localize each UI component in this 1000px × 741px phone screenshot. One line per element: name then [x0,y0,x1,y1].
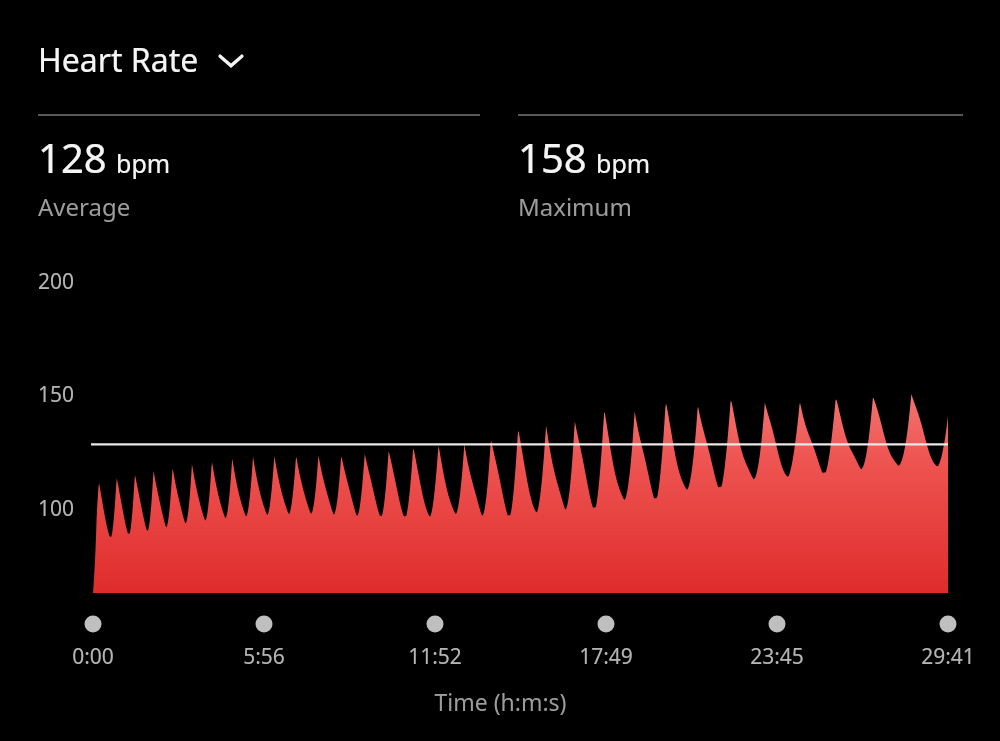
staticText: 200 [38,267,75,296]
staticText: 128 [38,130,107,184]
button[interactable]: Heart Rate, change metric [38,38,247,82]
staticText: 23:45 [750,642,804,671]
button[interactable]: 128 [38,130,478,223]
staticText: 158 [518,130,587,184]
staticText: 0:00 [72,642,114,671]
staticText: bpm [596,146,651,180]
staticText: bpm [116,146,171,180]
button[interactable]: 158 [518,130,958,223]
staticText: Time (h:m:s) [434,686,567,717]
staticText: 29:41 [921,642,975,671]
staticText: Heart Rate [38,38,199,82]
staticText: 100 [38,494,75,523]
staticText: 5:56 [243,642,285,671]
staticText: 150 [38,380,75,409]
staticText: Average [38,190,131,223]
staticText: 17:49 [579,642,633,671]
staticText: 11:52 [408,642,462,671]
staticText: Maximum [518,190,632,223]
